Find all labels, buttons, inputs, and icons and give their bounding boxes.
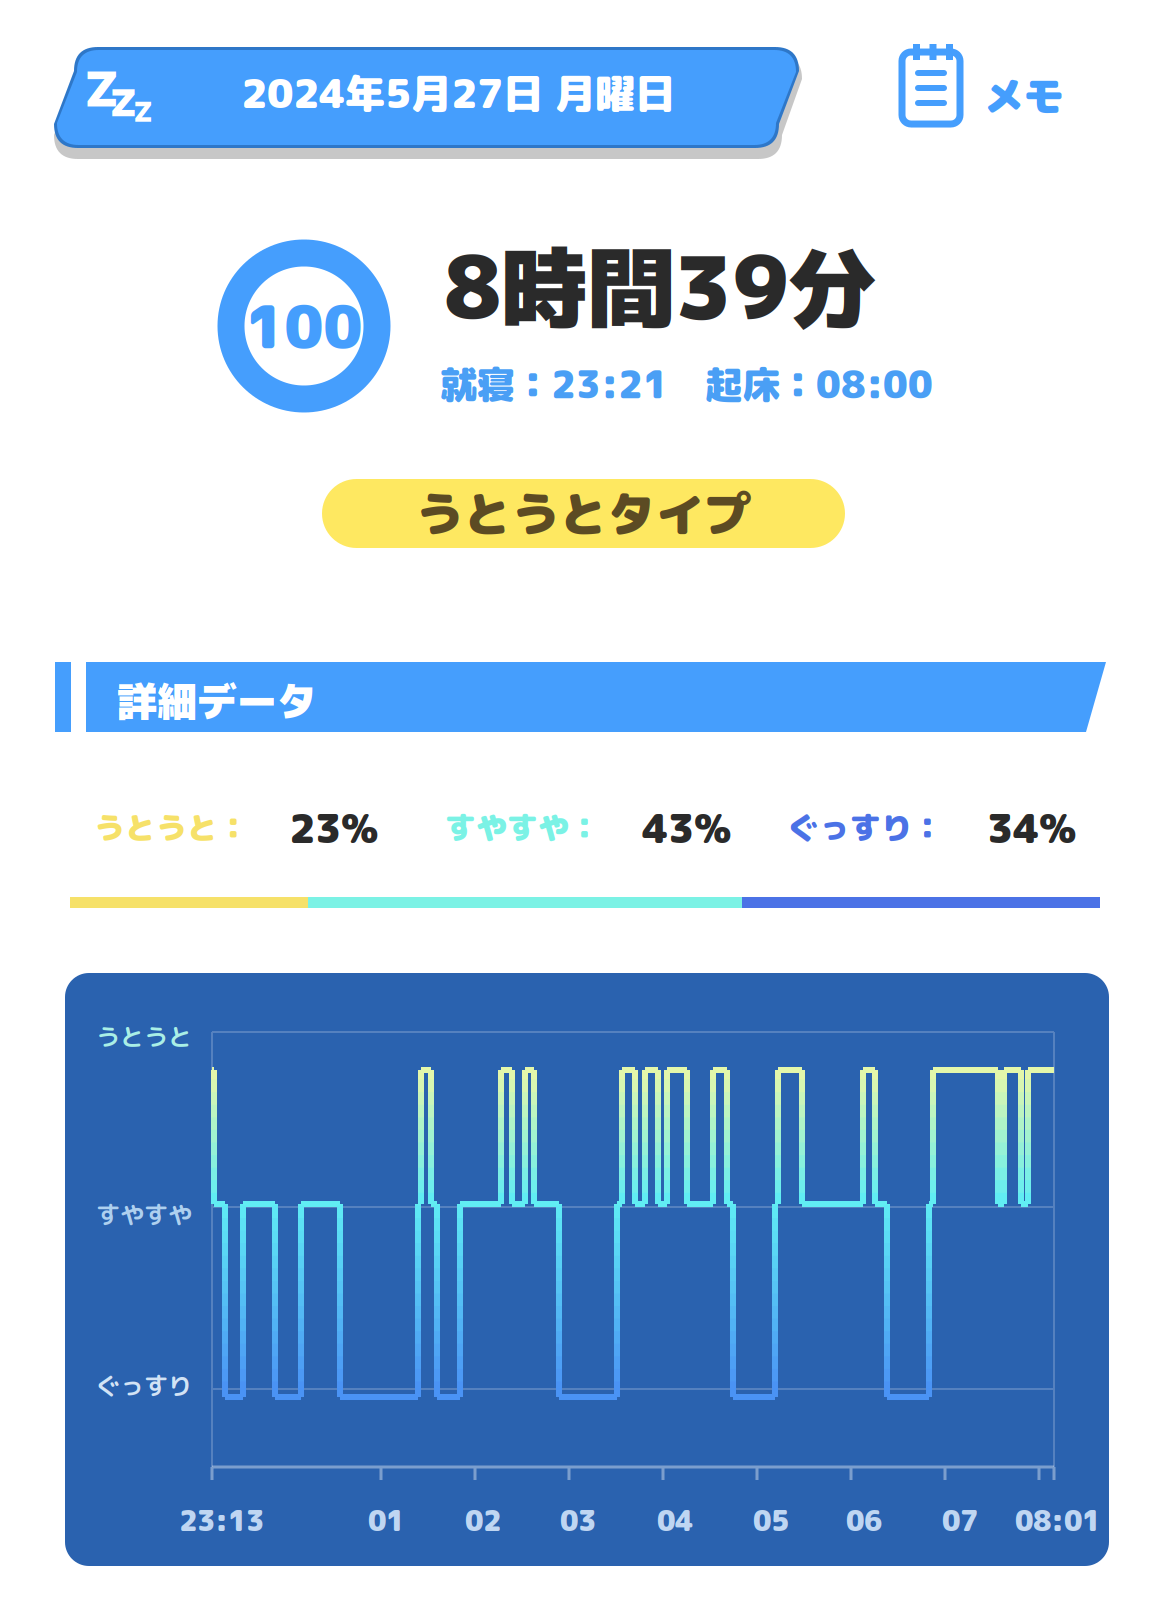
button[interactable]: うとうとタイプ [322,479,845,548]
staticText: うとうと： [94,806,249,849]
staticText: Z [85,60,118,118]
staticText: 04 [657,1501,693,1540]
staticText: 06 [846,1501,882,1540]
staticText: メモ [984,68,1064,124]
button[interactable]: Z [52,42,804,156]
staticText: 43% [642,800,731,856]
staticText: 07 [942,1501,978,1540]
staticText: Z [111,80,136,125]
staticText: 23% [289,800,378,856]
staticText: うとうと [96,1020,192,1053]
staticText: 詳細データ [117,673,317,729]
staticText: 05 [753,1501,789,1540]
staticText: うとうとタイプ [415,480,751,547]
staticText: 01 [368,1501,404,1540]
staticText: Z [134,96,152,128]
staticText: 8時間39分 [444,226,876,347]
staticText: 34% [987,800,1076,856]
staticText: 就寝：23:21 起床：08:00 [440,358,933,410]
staticText: 03 [560,1501,596,1540]
staticText: ぐっすり [96,1369,192,1402]
staticText: 02 [465,1501,501,1540]
staticText: 08:01 [1015,1501,1100,1540]
button[interactable]: メモ [900,40,1095,132]
staticText: ぐっすり： [788,806,943,849]
staticText: すやすや [96,1198,192,1231]
staticText: 23:13 [179,1501,264,1540]
staticText: 100 [245,285,362,367]
staticText: すやすや： [445,806,600,849]
staticText: 2024年5月27日 月曜日 [241,65,675,121]
